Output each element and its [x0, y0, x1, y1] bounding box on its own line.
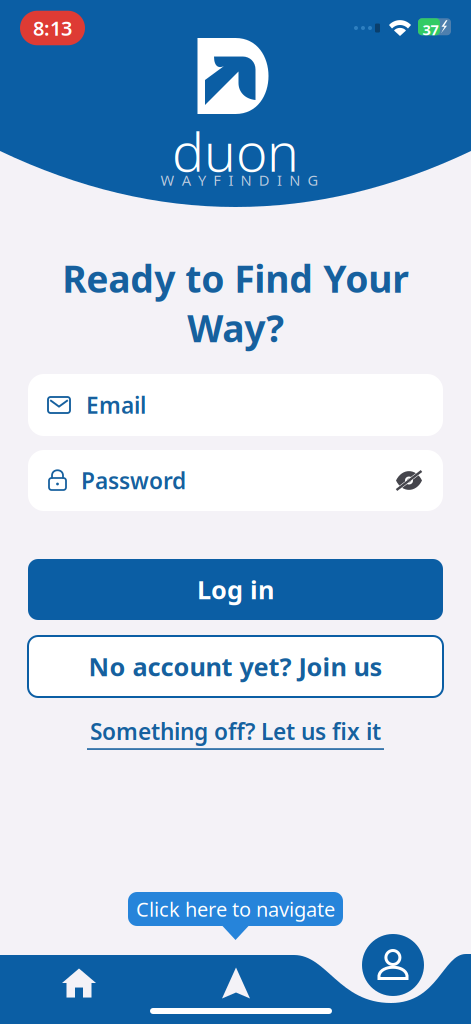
- staticText: 8:13: [33, 15, 72, 41]
- staticText: No account yet? Join us: [88, 650, 382, 683]
- staticText: Ready to Find Your Way?: [62, 253, 409, 353]
- staticText: Click here to navigate: [136, 896, 335, 922]
- button[interactable]: Something off? Let us fix it: [0, 718, 471, 748]
- button[interactable]: Home: [37, 954, 121, 1012]
- staticText: Something off? Let us fix it: [90, 716, 381, 746]
- staticText: Log in: [197, 573, 274, 606]
- staticText: Password: [81, 465, 186, 495]
- button[interactable]: No account yet? Join us: [28, 636, 443, 697]
- staticText: Email: [86, 390, 146, 420]
- staticText: duon: [172, 116, 299, 186]
- staticText: W A Y F I N D I N G: [161, 170, 318, 190]
- staticText: 37: [422, 20, 438, 39]
- button[interactable]: Navigate: [194, 954, 278, 1012]
- button[interactable]: Profile: [362, 934, 424, 996]
- button[interactable]: Log in: [28, 559, 443, 620]
